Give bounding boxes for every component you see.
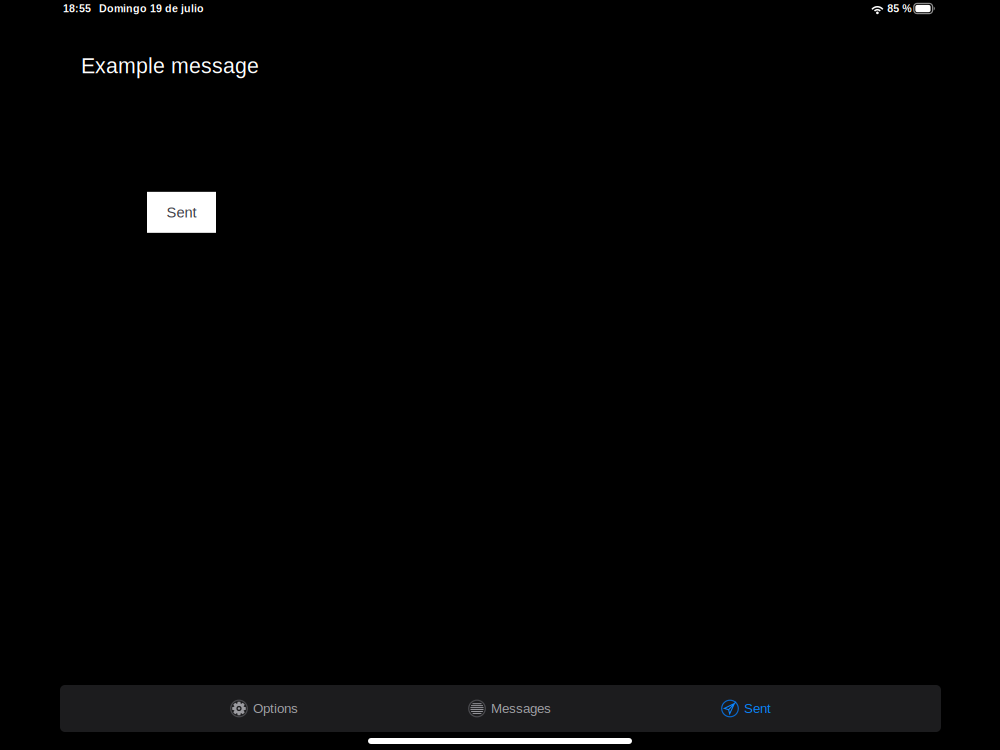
button[interactable]: Sent <box>721 685 771 732</box>
staticText: 85 % <box>887 2 911 14</box>
button[interactable]: Sent <box>147 192 216 233</box>
staticText: Sent <box>744 701 771 716</box>
button[interactable]: Options <box>230 685 298 732</box>
staticText: Messages <box>491 701 551 716</box>
staticText: Example message <box>81 54 259 78</box>
staticText: Domingo 19 de julio <box>99 2 204 14</box>
staticText: 18:55 <box>63 2 91 14</box>
staticText: Sent <box>166 204 196 220</box>
staticText: Options <box>253 701 298 716</box>
button[interactable]: Messages <box>468 685 551 732</box>
